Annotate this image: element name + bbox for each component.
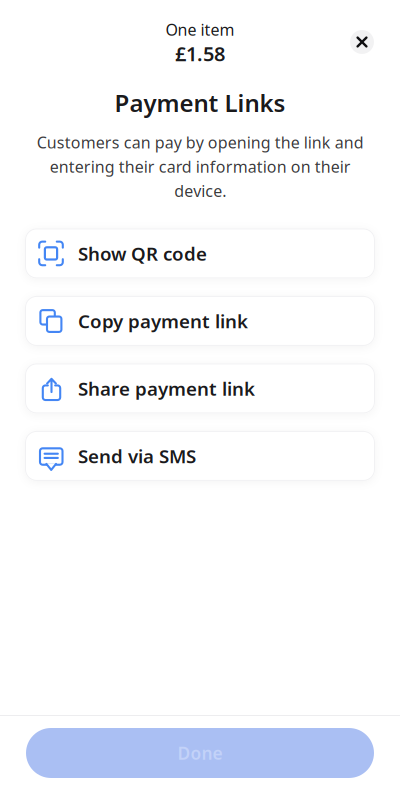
staticText: Send via SMS (78, 443, 196, 468)
button[interactable]: Done (26, 728, 374, 778)
staticText: Payment Links (114, 87, 285, 119)
staticText: Customers can pay by opening the link an… (36, 132, 363, 201)
button[interactable]: Send via SMS (25, 431, 375, 481)
staticText: £1.58 (175, 40, 225, 67)
staticText: One item (165, 19, 234, 40)
button[interactable]: Show QR code (25, 228, 375, 278)
button[interactable]: Close (340, 20, 384, 64)
staticText: Show QR code (78, 241, 207, 266)
button[interactable]: Share payment link (25, 363, 375, 413)
staticText: Copy payment link (78, 308, 248, 333)
staticText: Done (177, 741, 222, 764)
staticText: Share payment link (78, 376, 255, 401)
button[interactable]: Copy payment link (25, 296, 375, 346)
